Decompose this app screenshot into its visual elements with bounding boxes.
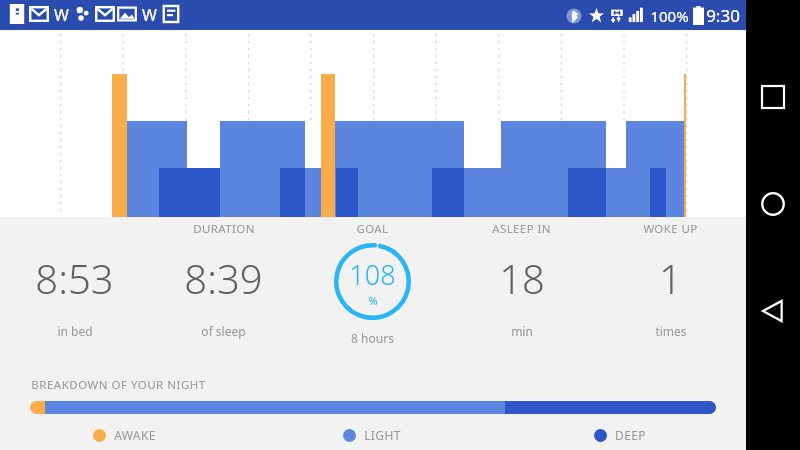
- staticText: DURATION: [193, 221, 255, 237]
- button[interactable]: LIGHT: [248, 427, 496, 450]
- button[interactable]: [30, 401, 716, 414]
- staticText: min: [511, 323, 533, 339]
- staticText: ASLEEP IN: [492, 221, 551, 237]
- button[interactable]: AWAKE: [0, 427, 248, 450]
- button[interactable]: Home: [751, 182, 795, 226]
- button[interactable]: 108: [298, 243, 447, 346]
- button[interactable]: 1: [596, 243, 745, 339]
- staticText: 18: [499, 251, 545, 305]
- staticText: 9:30: [706, 4, 740, 27]
- staticText: BREAKDOWN OF YOUR NIGHT: [31, 377, 206, 393]
- button[interactable]: DEEP: [496, 427, 744, 450]
- staticText: W: [54, 4, 69, 26]
- button[interactable]: 8:39: [149, 243, 298, 339]
- button[interactable]: 8:53: [0, 243, 149, 339]
- button[interactable]: Recent apps: [751, 75, 795, 119]
- staticText: 8:39: [184, 251, 263, 305]
- staticText: LIGHT: [364, 427, 401, 443]
- button[interactable]: Back: [751, 289, 795, 333]
- staticText: 8:53: [35, 251, 114, 305]
- staticText: 1: [659, 251, 682, 305]
- staticText: GOAL: [356, 221, 389, 237]
- staticText: DEEP: [615, 427, 646, 443]
- staticText: %: [368, 293, 378, 308]
- staticText: WOKE UP: [643, 221, 698, 237]
- staticText: W: [142, 4, 157, 26]
- staticText: of sleep: [201, 323, 246, 339]
- staticText: times: [655, 323, 687, 339]
- staticText: 100%: [650, 6, 689, 26]
- button[interactable]: 18: [447, 243, 596, 339]
- staticText: AWAKE: [114, 427, 156, 443]
- staticText: in bed: [57, 323, 93, 339]
- staticText: 8 hours: [351, 330, 394, 346]
- staticText: 108: [349, 256, 396, 293]
